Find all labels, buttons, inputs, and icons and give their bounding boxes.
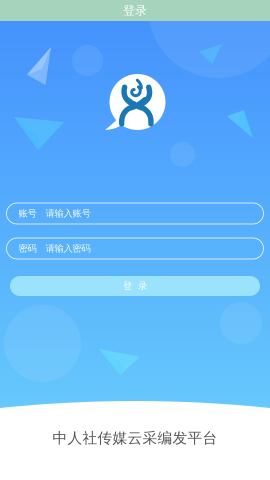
- staticText: 密码: [18, 243, 36, 254]
- staticText: 登 录: [123, 280, 147, 292]
- staticText: 请输入密码: [45, 243, 90, 254]
- staticText: 中人社传媒云采编发平台: [52, 429, 217, 447]
- staticText: 登录: [123, 3, 147, 18]
- staticText: 账号: [18, 208, 36, 219]
- button[interactable]: 登 录: [10, 276, 260, 296]
- button[interactable]: 账号: [6, 203, 263, 224]
- button[interactable]: 密码: [6, 238, 263, 259]
- staticText: 请输入账号: [45, 208, 90, 219]
